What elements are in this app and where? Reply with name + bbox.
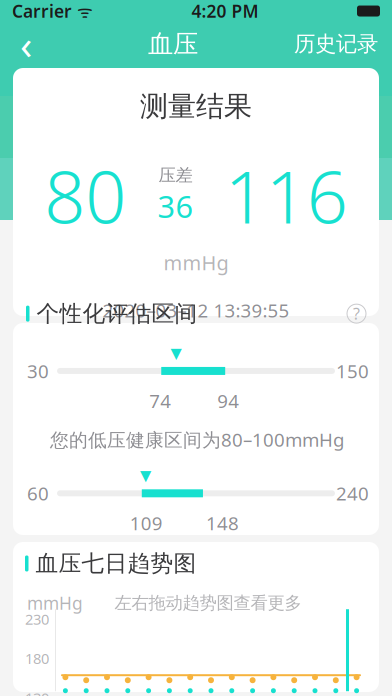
staticText: 150 [336,359,369,383]
staticText: ▼ [140,467,151,484]
staticText: Carrier [12,0,72,22]
staticText: 您的高压健康区间为120–145mmHg [44,549,349,574]
staticText: 148 [206,511,239,535]
staticText: 2020–03–12 13:39:55 [102,298,289,323]
staticText: 116 [225,148,348,243]
staticText: 36 [157,186,193,226]
staticText: mmHg [163,249,228,276]
staticText: 个性化评估区间 [36,300,197,327]
button[interactable]: Help [347,304,380,323]
staticText: 左右拖动趋势图查看更多 [114,592,301,614]
staticText: 4:20 PM [191,0,258,22]
staticText: 130 [25,688,49,696]
staticText: ‹ [20,17,32,70]
staticText: 230 [25,609,49,629]
button[interactable]: Back [0,22,52,66]
staticText: 血压七日趋势图 [35,550,196,577]
staticText: 血压 [148,28,198,59]
staticText: 74 [149,388,171,413]
staticText: 94 [217,388,239,413]
staticText: 测量结果 [140,89,252,124]
staticText: 30 [27,359,49,383]
staticText: 180 [25,649,49,668]
staticText: 60 [27,481,49,506]
staticText: 80 [44,148,126,243]
staticText: 压差 [158,164,192,186]
button[interactable]: 历史记录 [294,22,392,66]
staticText: mmHg [27,591,83,614]
staticText: 240 [336,481,369,506]
staticText: 您的低压健康区间为80–100mmHg [50,427,344,452]
staticText: ? [353,303,360,324]
staticText: 109 [130,511,163,535]
staticText: 历史记录 [294,31,378,57]
staticText: ᯤ [72,0,93,22]
staticText: ▼ [170,345,181,361]
